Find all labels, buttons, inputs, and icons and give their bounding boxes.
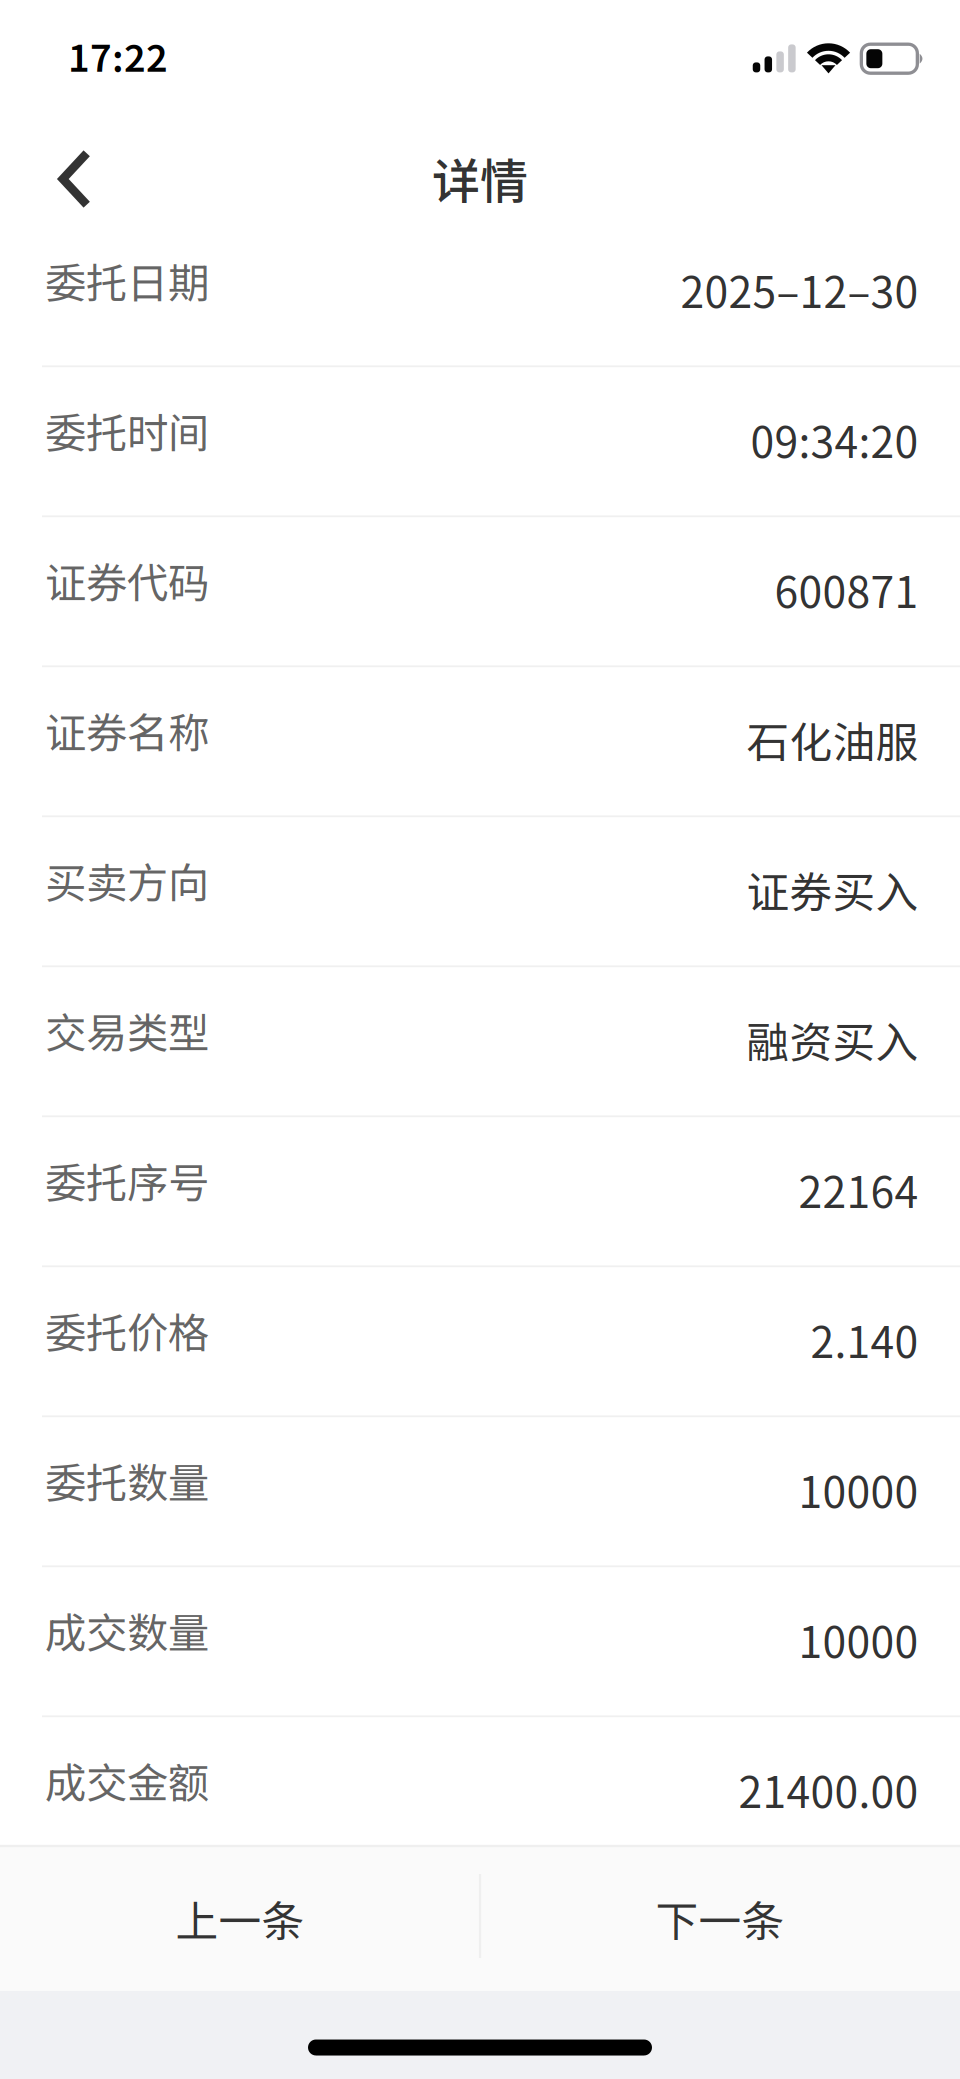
staticText: 证券代码: [45, 550, 209, 610]
staticText: 下一条: [655, 1888, 784, 1949]
staticText: 21400.00: [738, 1758, 918, 1820]
button[interactable]: 上一条: [0, 1846, 479, 1991]
staticText: 2025–12–30: [680, 258, 918, 320]
staticText: 委托日期: [45, 250, 209, 310]
staticText: 17:22: [68, 28, 168, 83]
staticText: 证券名称: [45, 700, 209, 760]
staticText: 证券买入: [746, 858, 918, 920]
staticText: 石化油服: [746, 708, 918, 770]
staticText: 2.140: [810, 1308, 918, 1370]
staticText: 成交数量: [45, 1600, 209, 1660]
staticText: 600871: [774, 558, 918, 620]
staticText: 买卖方向: [45, 850, 209, 910]
button[interactable]: 返回: [10, 126, 140, 232]
staticText: 10000: [798, 1608, 918, 1670]
staticText: 09:34:20: [750, 408, 918, 470]
staticText: 委托价格: [45, 1300, 209, 1360]
staticText: 委托序号: [45, 1150, 209, 1210]
staticText: 详情: [432, 143, 528, 213]
staticText: 交易类型: [45, 1000, 209, 1060]
staticText: 委托时间: [45, 400, 209, 460]
staticText: 成交金额: [45, 1750, 209, 1810]
staticText: 上一条: [175, 1888, 304, 1949]
staticText: 10000: [798, 1458, 918, 1520]
button[interactable]: 下一条: [480, 1846, 959, 1991]
staticText: 22164: [798, 1158, 918, 1220]
staticText: 融资买入: [746, 1008, 918, 1070]
staticText: 委托数量: [45, 1450, 209, 1510]
